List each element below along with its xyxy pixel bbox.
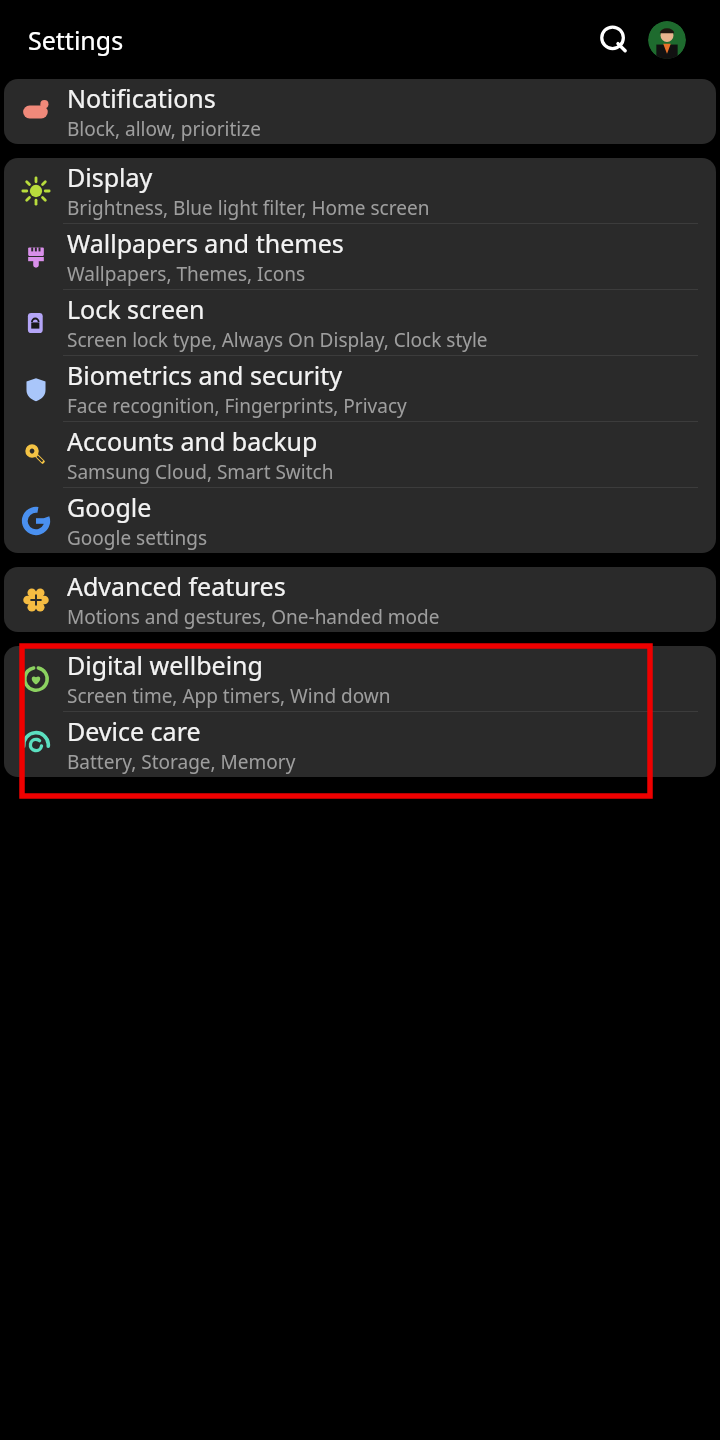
staticText: Display xyxy=(67,160,153,194)
staticText: Digital wellbeing xyxy=(67,648,263,682)
button[interactable]: Notifications xyxy=(4,79,716,144)
button[interactable]: Digital wellbeing xyxy=(4,646,716,712)
staticText: Samsung Cloud, Smart Switch xyxy=(67,459,334,485)
staticText: Notifications xyxy=(67,81,216,115)
staticText: Accounts and backup xyxy=(67,424,318,458)
staticText: Face recognition, Fingerprints, Privacy xyxy=(67,393,407,419)
staticText: Screen lock type, Always On Display, Clo… xyxy=(67,327,488,353)
button[interactable]: Search xyxy=(596,22,632,58)
staticText: Biometrics and security xyxy=(67,358,343,392)
staticText: Block, allow, prioritize xyxy=(67,116,261,142)
button[interactable]: Lock screen xyxy=(4,290,716,356)
button[interactable]: Wallpapers and themes xyxy=(4,224,716,290)
button[interactable]: Profile xyxy=(648,21,686,59)
staticText: Lock screen xyxy=(67,292,205,326)
staticText: Screen time, App timers, Wind down xyxy=(67,683,391,709)
staticText: Wallpapers and themes xyxy=(67,226,344,260)
staticText: Wallpapers, Themes, Icons xyxy=(67,261,306,287)
staticText: Google settings xyxy=(67,525,208,551)
staticText: Brightness, Blue light filter, Home scre… xyxy=(67,195,430,221)
staticText: Battery, Storage, Memory xyxy=(67,749,296,775)
staticText: Settings xyxy=(28,23,124,57)
button[interactable]: Google xyxy=(4,488,716,553)
button[interactable]: Advanced features xyxy=(4,567,716,632)
staticText: Device care xyxy=(67,714,201,748)
button[interactable]: Biometrics and security xyxy=(4,356,716,422)
button[interactable]: Display xyxy=(4,158,716,224)
staticText: Google xyxy=(67,490,152,524)
button[interactable]: Device care xyxy=(4,712,716,777)
staticText: Motions and gestures, One-handed mode xyxy=(67,604,440,630)
staticText: Advanced features xyxy=(67,569,286,603)
button[interactable]: Accounts and backup xyxy=(4,422,716,488)
